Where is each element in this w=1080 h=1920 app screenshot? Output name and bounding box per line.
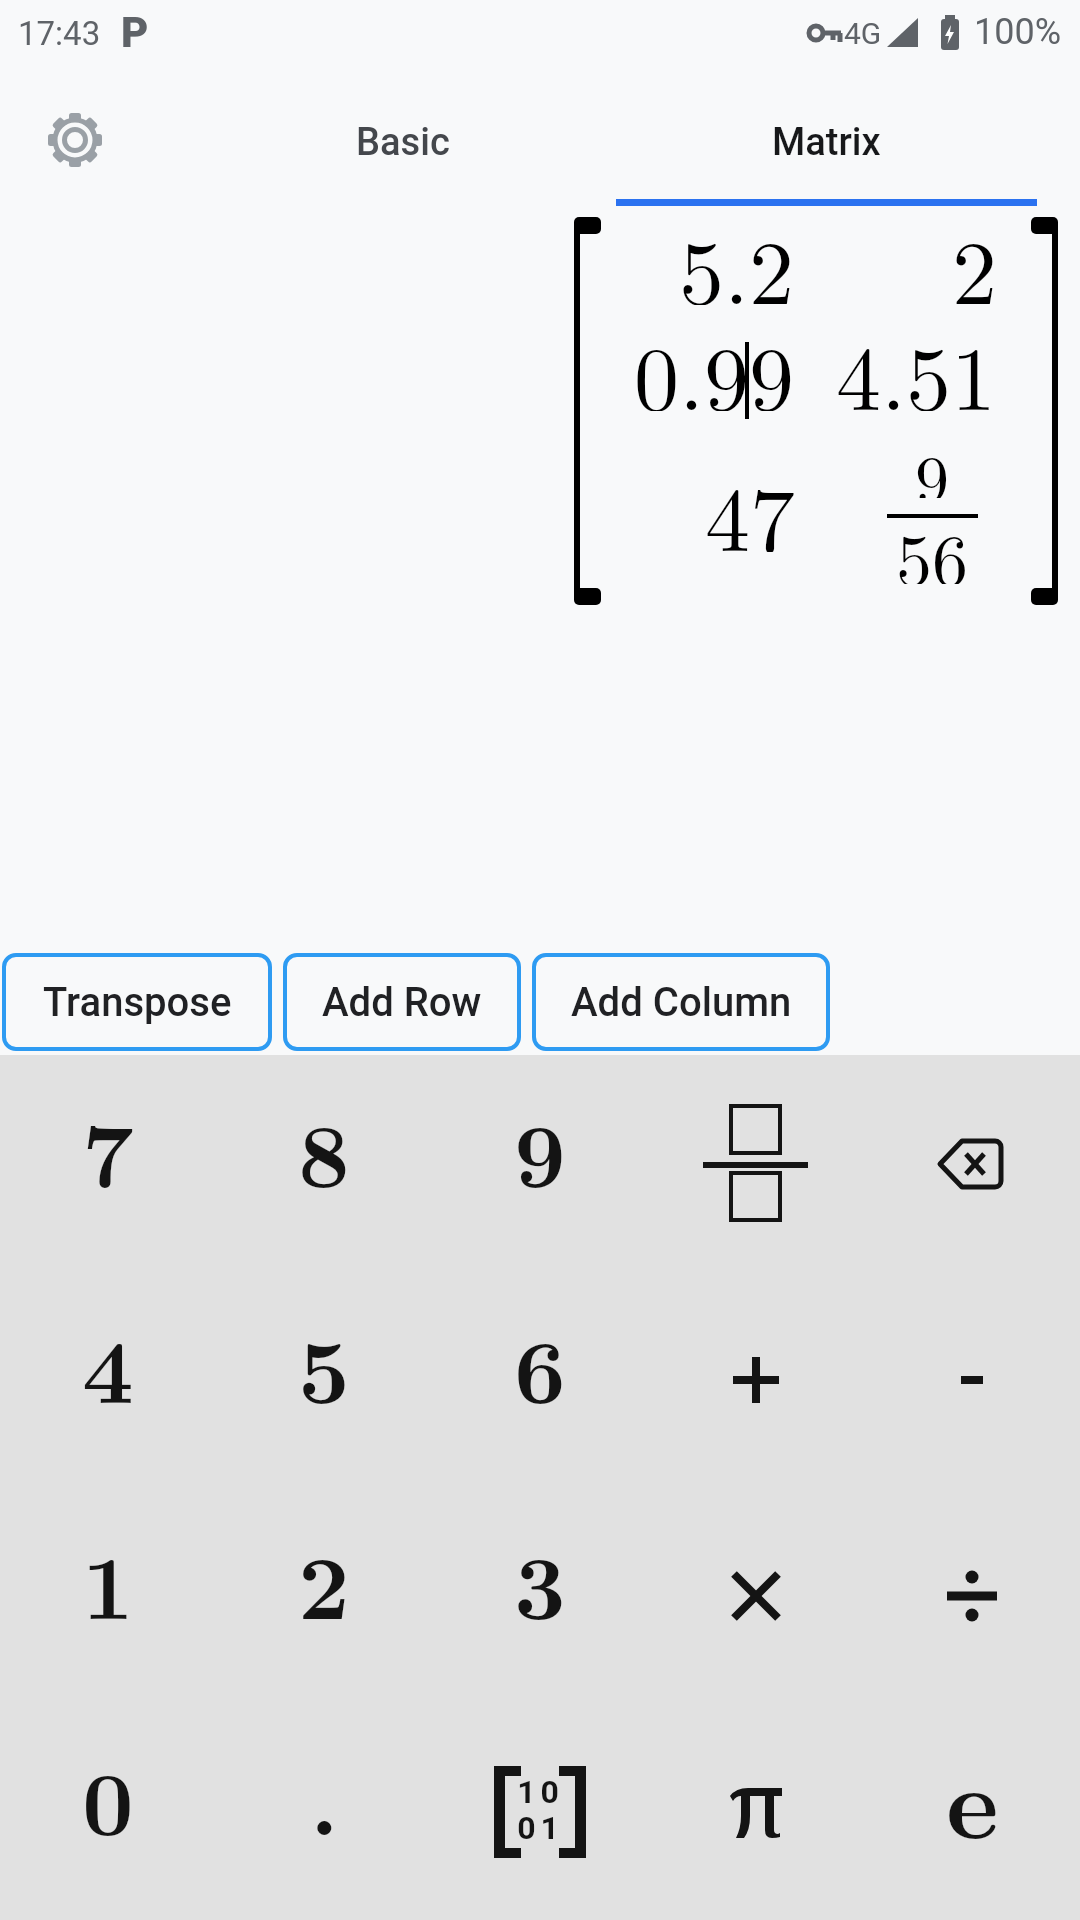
staticText: e xyxy=(946,1725,999,1868)
button[interactable]: Matrix xyxy=(616,82,1037,202)
button[interactable]: Transpose xyxy=(2,953,272,1051)
staticText: 8 xyxy=(298,1085,350,1214)
staticText: 10 xyxy=(517,1773,564,1811)
button[interactable]: 4 xyxy=(0,1271,216,1488)
button[interactable] xyxy=(648,1271,864,1488)
button[interactable] xyxy=(648,1487,864,1704)
button[interactable] xyxy=(864,1055,1080,1272)
button[interactable] xyxy=(35,100,115,180)
button[interactable]: . xyxy=(216,1703,432,1920)
staticText: 01 xyxy=(517,1809,564,1847)
staticText: . xyxy=(310,1733,339,1862)
staticText: 7 xyxy=(82,1085,134,1214)
staticText: 5.2 xyxy=(679,203,795,305)
staticText: 4.51 xyxy=(836,309,997,411)
staticText: 47 xyxy=(705,450,795,552)
button[interactable] xyxy=(648,1703,864,1920)
staticText: Add Row xyxy=(322,979,482,1026)
button[interactable] xyxy=(648,1055,864,1272)
staticText: P xyxy=(121,8,149,56)
button[interactable]: Add Row xyxy=(283,953,521,1051)
staticText: 0.99 xyxy=(634,309,795,411)
staticText: 9 xyxy=(514,1085,566,1214)
button[interactable]: 6 xyxy=(432,1271,648,1488)
button[interactable]: 1 xyxy=(0,1487,216,1704)
button[interactable]: 8 xyxy=(216,1055,432,1272)
staticText: 4G xyxy=(844,16,882,51)
button[interactable]: 5 xyxy=(216,1271,432,1488)
button[interactable]: 9 xyxy=(432,1055,648,1272)
button[interactable]: 3 xyxy=(432,1487,648,1704)
button[interactable]: e xyxy=(864,1703,1080,1920)
staticText: 4 xyxy=(82,1301,134,1430)
staticText: 56 xyxy=(896,504,969,584)
staticText: Transpose xyxy=(43,979,232,1026)
button[interactable]: 7 xyxy=(0,1055,216,1272)
staticText: Basic xyxy=(356,120,450,165)
button[interactable]: 0 xyxy=(0,1703,216,1920)
staticText: 1 xyxy=(82,1517,134,1646)
button[interactable]: 10 xyxy=(432,1703,648,1920)
button[interactable]: 2 xyxy=(216,1487,432,1704)
staticText: 2 xyxy=(952,203,997,305)
staticText: 0 xyxy=(82,1733,134,1862)
staticText: 100% xyxy=(974,11,1062,53)
staticText: 3 xyxy=(514,1517,566,1646)
staticText: 6 xyxy=(514,1301,566,1430)
button[interactable] xyxy=(864,1271,1080,1488)
button[interactable]: Basic xyxy=(190,82,616,202)
staticText: 5 xyxy=(298,1301,350,1430)
button[interactable] xyxy=(864,1487,1080,1704)
button[interactable]: Add Column xyxy=(532,953,830,1051)
staticText: Add Column xyxy=(571,979,792,1026)
staticText: 9 xyxy=(915,426,950,498)
staticText: Matrix xyxy=(772,120,881,165)
staticText: 2 xyxy=(298,1517,350,1646)
staticText: 17:43 xyxy=(18,14,101,53)
